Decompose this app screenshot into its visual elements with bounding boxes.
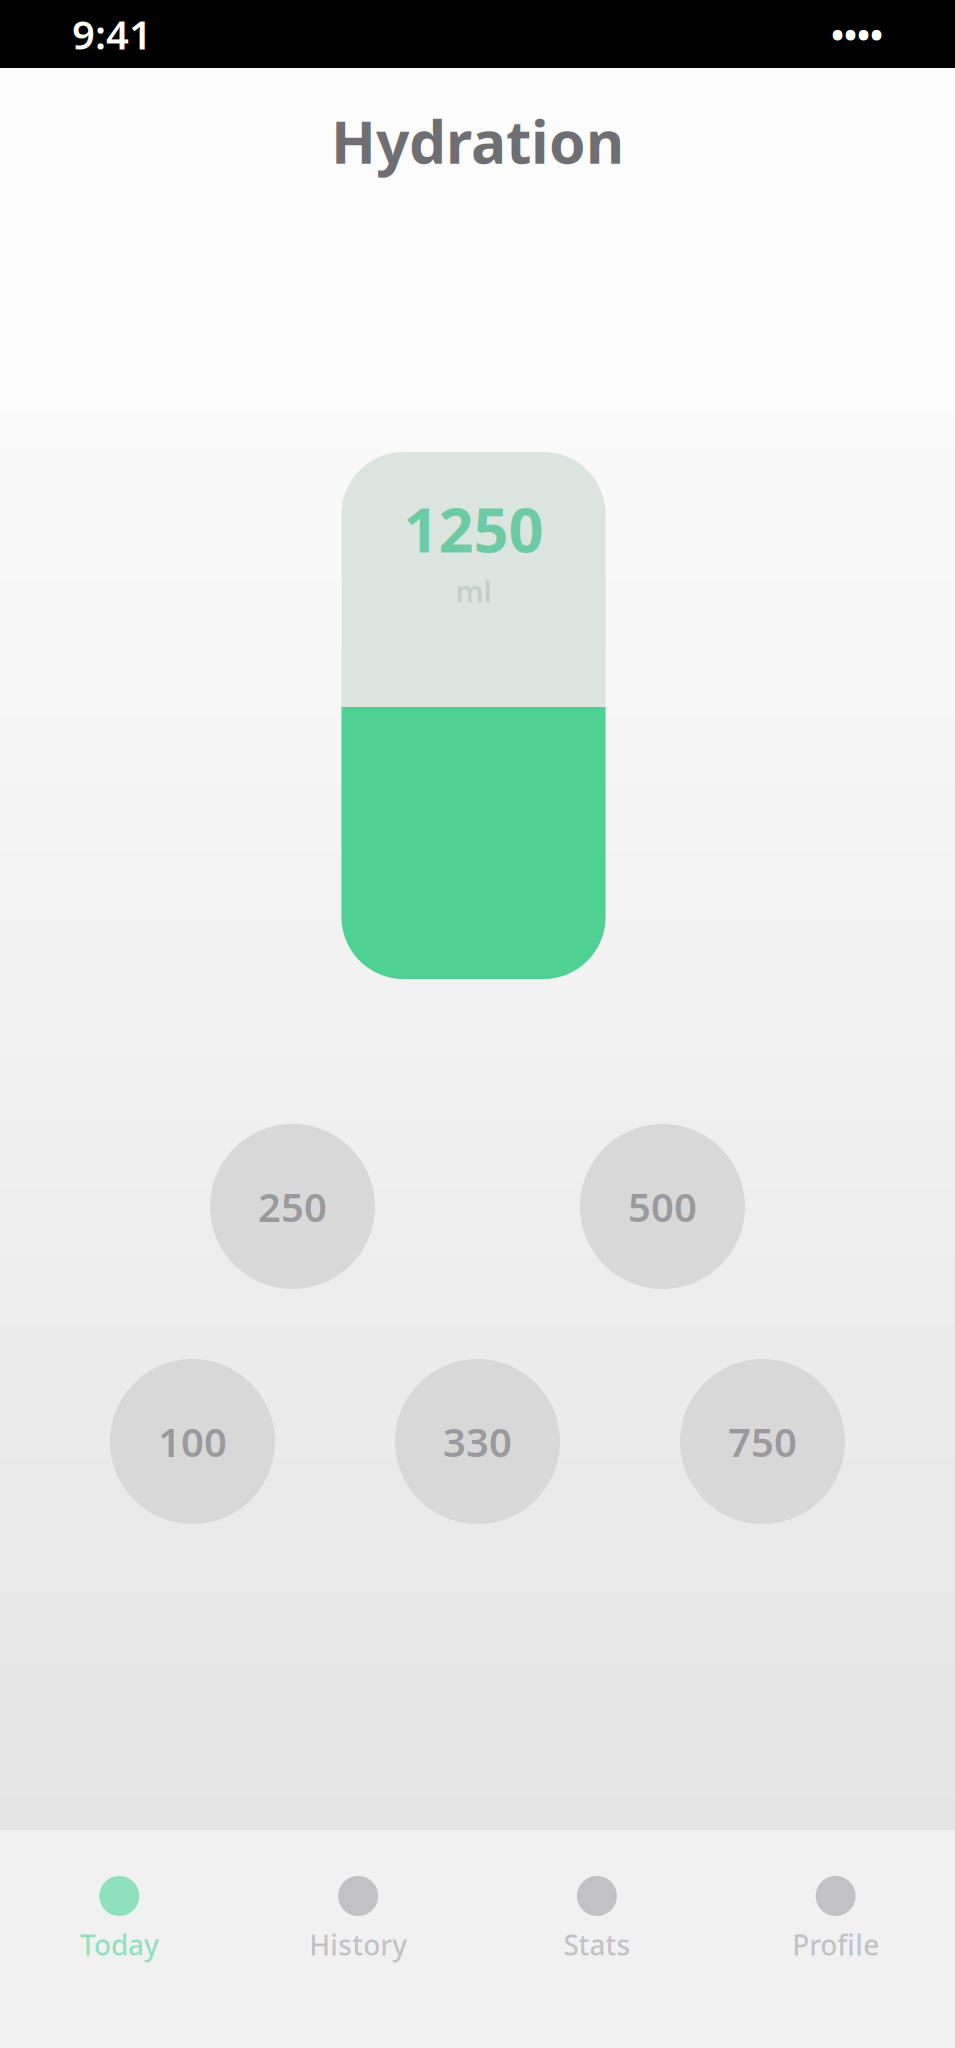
button[interactable]: 330 <box>395 1359 560 1524</box>
staticText: Stats <box>563 1926 630 1963</box>
button[interactable]: 100 <box>110 1359 275 1524</box>
staticText: ml <box>455 571 491 610</box>
staticText: 250 <box>258 1180 327 1233</box>
button[interactable]: 750 <box>680 1359 845 1524</box>
button[interactable]: Profile <box>716 1830 955 2048</box>
staticText: 330 <box>443 1415 512 1468</box>
staticText: 100 <box>158 1415 227 1468</box>
staticText: •••• <box>831 11 883 57</box>
staticText: 750 <box>728 1415 797 1468</box>
button[interactable]: Today <box>0 1830 239 2048</box>
staticText: History <box>309 1926 407 1963</box>
staticText: Hydration <box>331 102 624 180</box>
button[interactable]: 250 <box>210 1124 375 1289</box>
button[interactable]: History <box>239 1830 478 2048</box>
staticText: Profile <box>792 1926 879 1963</box>
button[interactable]: 500 <box>580 1124 745 1289</box>
staticText: 500 <box>628 1180 697 1233</box>
button[interactable]: Stats <box>477 1830 716 2048</box>
staticText: Today <box>80 1926 159 1963</box>
staticText: 9:41 <box>72 7 152 60</box>
staticText: 1250 <box>403 488 543 569</box>
